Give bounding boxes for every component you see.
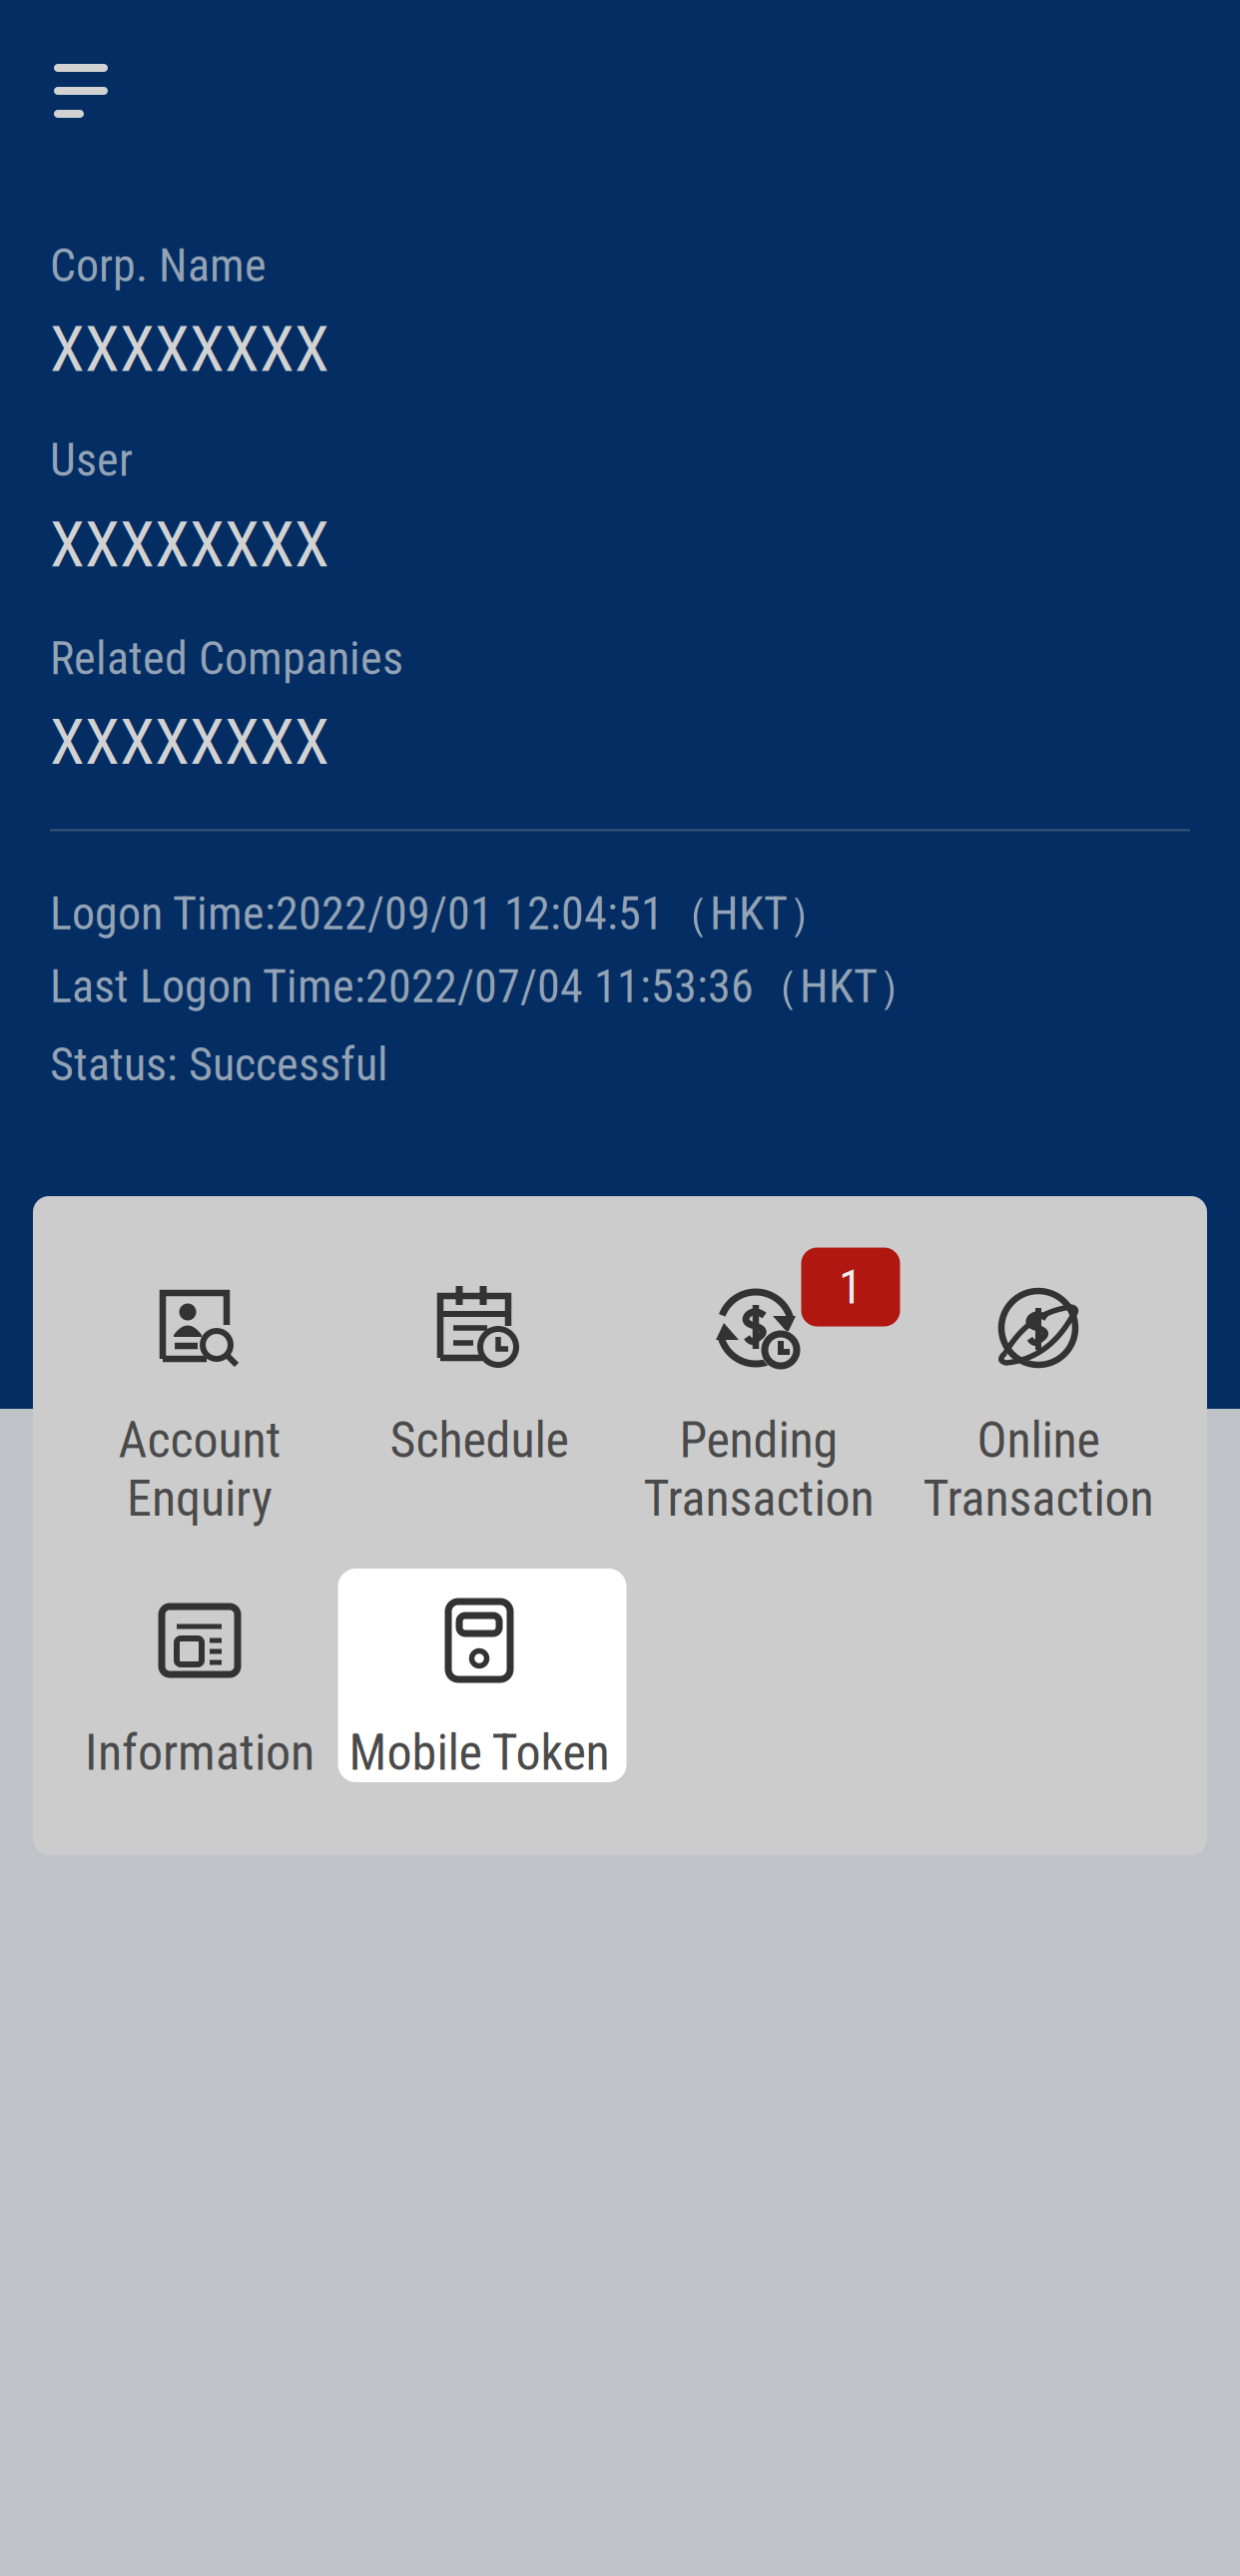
staticText: Corp. Name xyxy=(50,239,267,292)
staticText: Information xyxy=(85,1723,314,1782)
button[interactable]: Information xyxy=(60,1596,339,1809)
staticText: Last Logon Time:2022/07/04 11:53:36（HKT） xyxy=(50,958,924,1016)
staticText: Online xyxy=(977,1411,1100,1469)
button[interactable]: 1 xyxy=(619,1283,899,1553)
staticText: Schedule xyxy=(390,1411,569,1469)
staticText: User xyxy=(50,433,133,487)
staticText: Logon Time:2022/09/01 12:04:51（HKT） xyxy=(50,885,834,943)
button[interactable]: Online xyxy=(899,1283,1178,1553)
staticText: XXXXXXXX xyxy=(50,705,329,779)
staticText: 1 xyxy=(839,1259,863,1315)
staticText: Mobile Token xyxy=(349,1723,610,1782)
staticText: Pending xyxy=(679,1411,838,1469)
button[interactable]: Account xyxy=(60,1283,339,1553)
staticText: Account xyxy=(118,1411,281,1469)
staticText: XXXXXXXX xyxy=(50,312,329,386)
staticText: Status: Successful xyxy=(50,1038,388,1092)
staticText: XXXXXXXX xyxy=(50,508,329,582)
button[interactable]: Mobile Token xyxy=(339,1596,619,1809)
button[interactable]: Schedule xyxy=(339,1283,619,1553)
button[interactable]: Menu xyxy=(0,0,156,164)
staticText: Transaction xyxy=(643,1469,874,1528)
staticText: Related Companies xyxy=(50,632,403,685)
staticText: Transaction xyxy=(923,1469,1154,1528)
staticText: Enquiry xyxy=(127,1469,273,1528)
